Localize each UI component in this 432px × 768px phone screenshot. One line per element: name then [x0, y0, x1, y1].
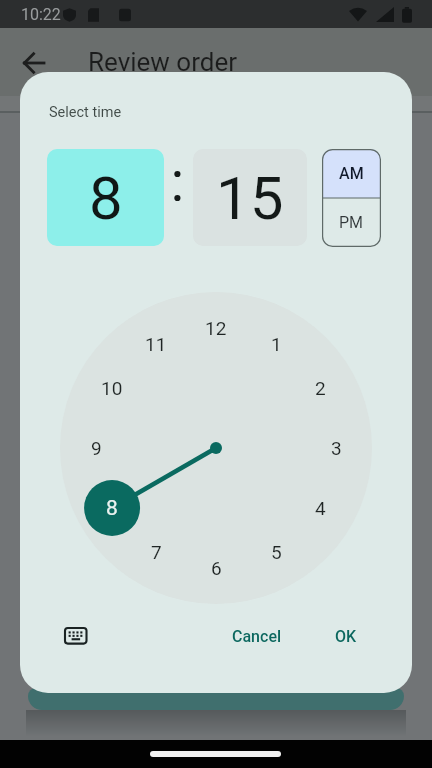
button[interactable]: OK	[326, 622, 366, 650]
button[interactable]: 3	[316, 428, 356, 468]
button[interactable]	[64, 627, 88, 645]
staticText: 10	[101, 377, 123, 399]
button[interactable]: 11	[136, 324, 176, 364]
staticText: Cancel	[232, 627, 282, 646]
button[interactable]: 7	[136, 532, 176, 572]
staticText: Select time	[49, 104, 122, 121]
button[interactable]: 5	[256, 532, 296, 572]
staticText: 15	[216, 163, 284, 233]
staticText: 8	[89, 163, 123, 233]
staticText: 2	[315, 377, 326, 399]
button[interactable]	[23, 52, 45, 74]
button[interactable]: 8	[47, 149, 164, 246]
button[interactable]: 2	[300, 368, 340, 408]
button[interactable]: 6	[196, 548, 236, 588]
staticText: Review order	[88, 47, 237, 76]
button[interactable]: 8	[92, 488, 132, 528]
button[interactable]: PM	[322, 198, 381, 247]
button[interactable]: 12	[196, 308, 236, 348]
staticText: 9	[91, 437, 102, 459]
staticText: 12	[205, 317, 227, 339]
staticText: AM	[339, 164, 364, 183]
button[interactable]: 4	[300, 488, 340, 528]
button[interactable]: AM	[322, 149, 381, 198]
button[interactable]: 9	[76, 428, 116, 468]
staticText: 11	[145, 333, 167, 355]
staticText: 1	[271, 333, 282, 355]
staticText: 3	[331, 437, 342, 459]
staticText: 4	[315, 497, 326, 519]
staticText: 10:22	[21, 5, 61, 24]
button[interactable]: 1	[256, 324, 296, 364]
staticText: PM	[339, 213, 364, 232]
staticText: OK	[335, 627, 357, 646]
staticText: 6	[211, 557, 222, 579]
button[interactable]: 10	[92, 368, 132, 408]
button[interactable]: Cancel	[225, 622, 289, 650]
button[interactable]: 15	[193, 149, 307, 246]
staticText: 7	[151, 541, 162, 563]
staticText: 8	[106, 496, 118, 521]
staticText: 5	[271, 541, 282, 563]
